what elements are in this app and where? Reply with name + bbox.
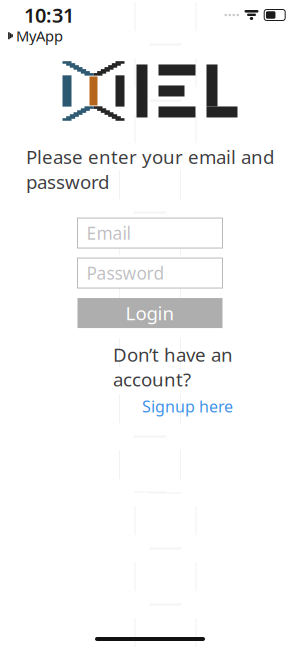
staticText: Signup here	[142, 396, 233, 417]
staticText: 10:31	[24, 2, 74, 28]
staticText: Don’t have an account?	[113, 342, 233, 392]
staticText: Login	[125, 301, 174, 325]
button[interactable]: Signup here	[142, 396, 233, 417]
button[interactable]: Password	[77, 258, 222, 288]
staticText: MyApp	[16, 26, 63, 45]
button[interactable]: Email	[77, 218, 222, 248]
staticText: Email	[86, 221, 130, 244]
button[interactable]: Login	[77, 298, 222, 328]
staticText: Password	[86, 261, 164, 284]
staticText: Please enter your email and password	[26, 144, 274, 194]
